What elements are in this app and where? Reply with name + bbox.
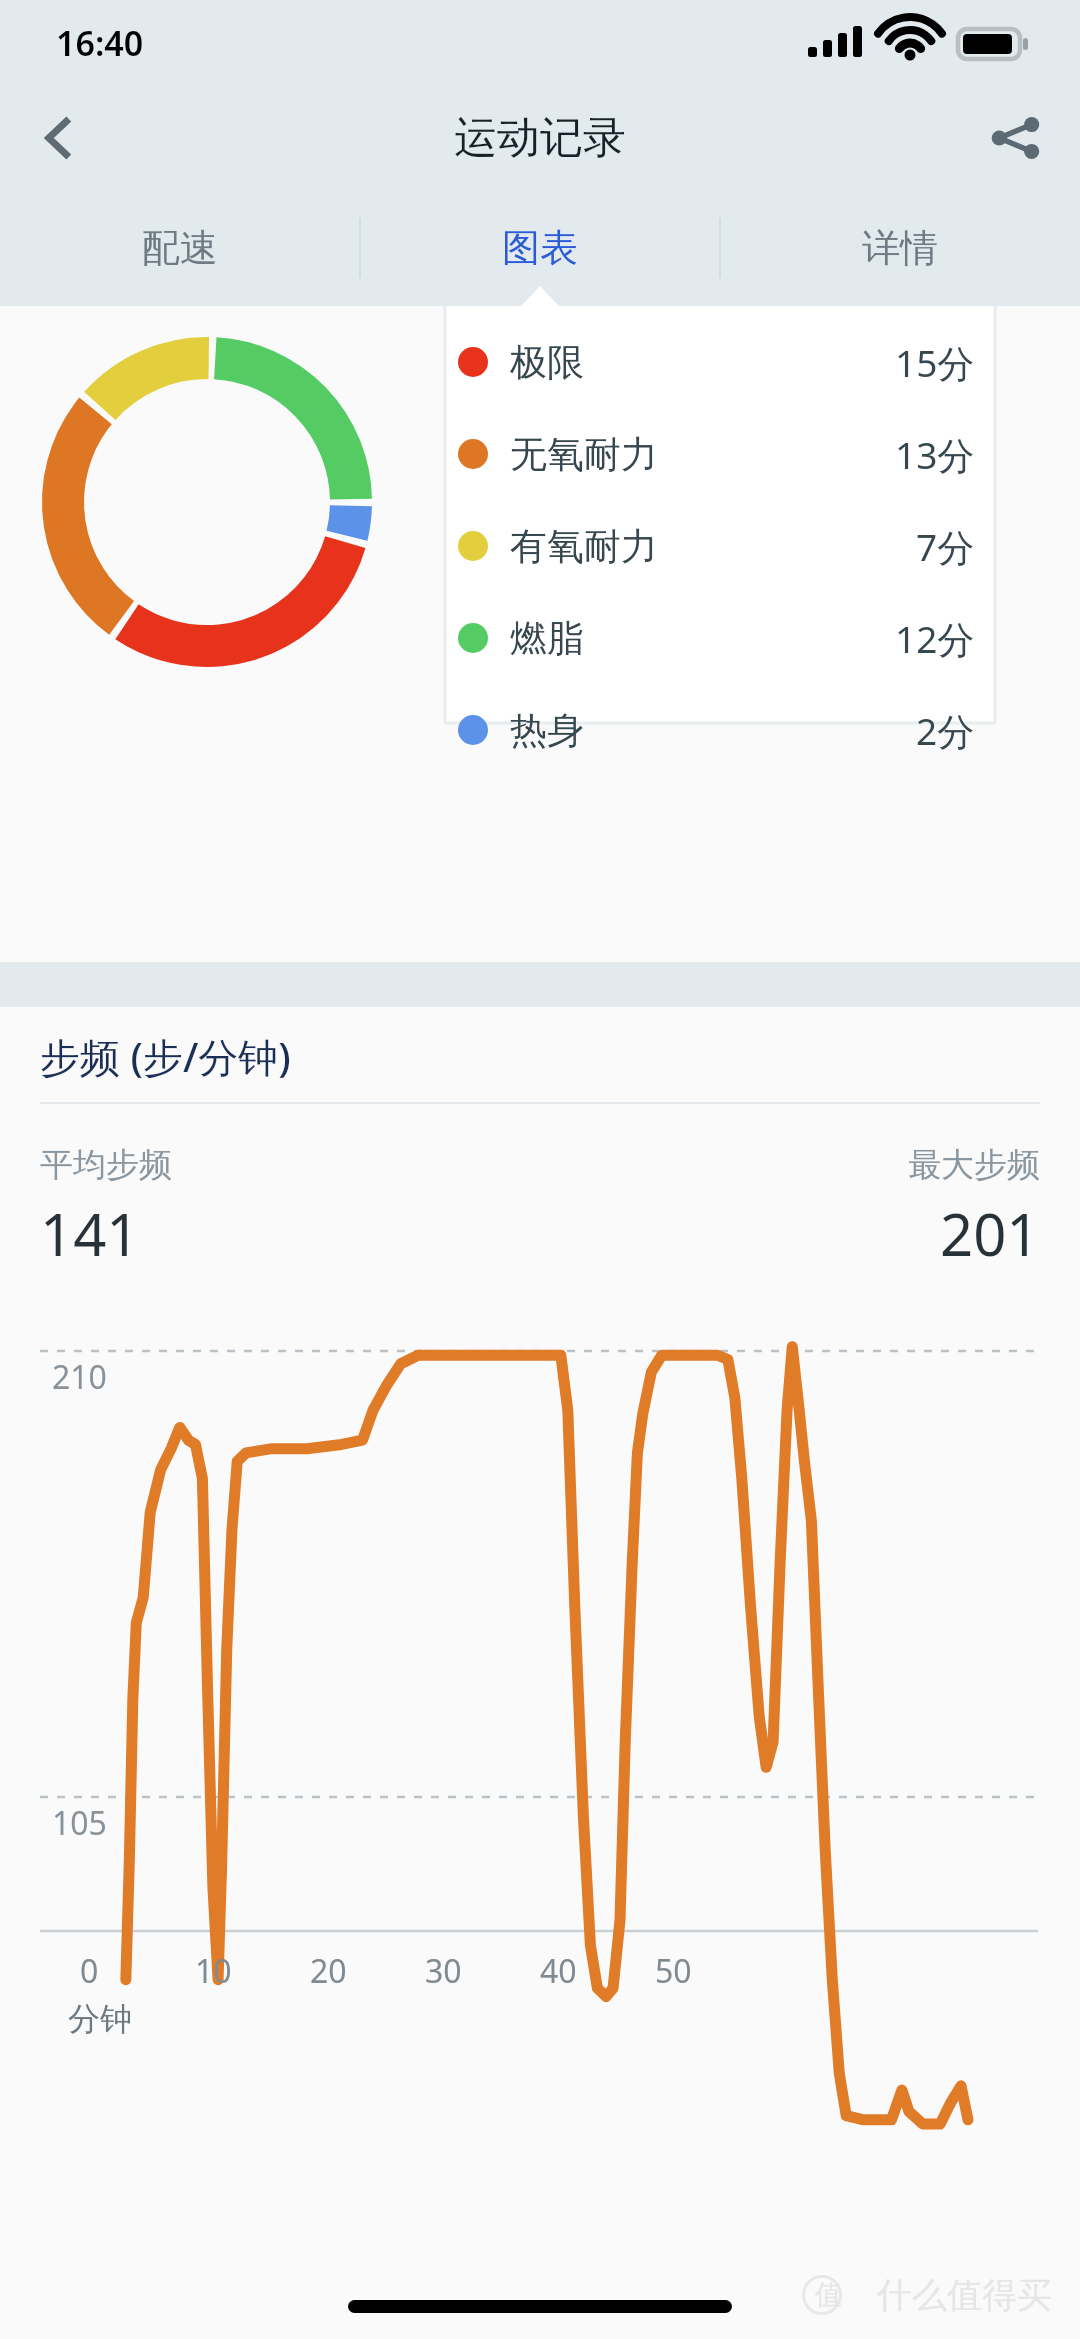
button[interactable]: 配速 [0, 190, 360, 306]
staticText: 40 [540, 1949, 577, 1993]
staticText: 12分 [895, 613, 975, 664]
staticText: 平均步频 [40, 1144, 172, 1186]
button[interactable]: 极限 [445, 316, 995, 408]
staticText: 2分 [916, 705, 975, 756]
staticText: 201 [940, 1194, 1040, 1273]
staticText: 图表 [502, 224, 578, 272]
staticText: 详情 [862, 224, 938, 272]
button[interactable]: 详情 [720, 190, 1080, 306]
staticText: 热身 [510, 707, 584, 754]
staticText: 210 [52, 1355, 107, 1399]
staticText: 20 [310, 1949, 347, 1993]
button[interactable]: 燃脂 [445, 592, 995, 684]
button[interactable]: 热身 [445, 684, 995, 776]
staticText: 141 [40, 1194, 140, 1273]
staticText: 15分 [895, 337, 975, 388]
staticText: 10 [195, 1949, 232, 1993]
staticText: 105 [52, 1801, 107, 1845]
staticText: 0 [80, 1949, 99, 1993]
staticText: 50 [655, 1949, 692, 1993]
button[interactable]: 有氧耐力 [445, 500, 995, 592]
button[interactable]: Share [970, 92, 1062, 184]
staticText: 最大步频 [908, 1144, 1040, 1186]
staticText: 16:40 [56, 20, 144, 66]
staticText: 配速 [142, 224, 218, 272]
staticText: 7分 [916, 521, 975, 572]
staticText: 无氧耐力 [510, 431, 658, 478]
staticText: 有氧耐力 [510, 523, 658, 570]
staticText: 燃脂 [510, 615, 584, 662]
staticText: 分钟 [68, 1999, 132, 2039]
staticText: 值 [815, 2278, 842, 2312]
staticText: 运动记录 [454, 111, 626, 165]
staticText: 步频 (步/分钟) [40, 1029, 291, 1084]
button[interactable]: Back [12, 92, 104, 184]
staticText: 极限 [510, 339, 584, 386]
staticText: 30 [425, 1949, 462, 1993]
staticText: 什么值得买 [877, 2273, 1052, 2317]
staticText: 13分 [895, 429, 975, 480]
button[interactable]: 无氧耐力 [445, 408, 995, 500]
button[interactable]: 图表 [360, 190, 720, 306]
